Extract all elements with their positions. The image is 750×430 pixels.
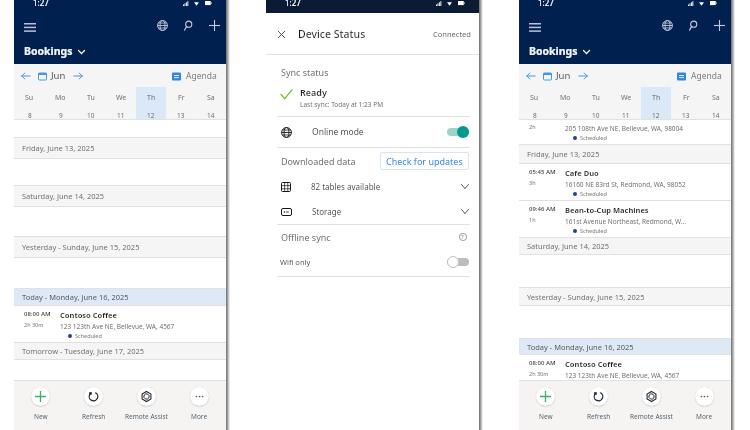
staticText: 14 xyxy=(207,111,215,119)
staticText: 05:45 AM xyxy=(529,168,556,176)
button[interactable]: Remote Assist xyxy=(625,387,678,421)
button[interactable]: Refresh xyxy=(572,387,625,421)
button[interactable]: Su xyxy=(519,87,550,119)
staticText: 8 xyxy=(533,111,537,119)
button[interactable]: More xyxy=(678,387,731,421)
staticText: Contoso Coffee xyxy=(60,310,117,320)
button[interactable]: Agenda xyxy=(172,70,217,82)
staticText: Yesterday - Sunday, June 15, 2025 xyxy=(527,292,645,302)
button[interactable]: Next day xyxy=(575,68,591,84)
staticText: Sync status xyxy=(281,66,329,78)
button[interactable]: Mo xyxy=(45,87,76,119)
staticText: Storage xyxy=(312,206,342,217)
button[interactable]: Search xyxy=(175,15,201,35)
button[interactable]: 09:46 AM xyxy=(519,201,731,238)
button[interactable]: New booking xyxy=(706,15,732,35)
staticText: Bookings xyxy=(529,44,578,58)
staticText: 8 xyxy=(28,111,32,119)
button[interactable]: 82 tables available xyxy=(266,174,479,199)
button[interactable]: Help xyxy=(456,230,469,243)
staticText: ? xyxy=(461,233,464,241)
staticText: 1h xyxy=(529,216,536,223)
button[interactable]: Mo xyxy=(550,87,581,119)
button[interactable]: On xyxy=(447,126,469,138)
staticText: Device Status xyxy=(298,27,366,41)
button[interactable]: Bookings xyxy=(529,44,590,58)
staticText: Online mode xyxy=(312,126,364,138)
button[interactable]: Sa xyxy=(196,87,226,119)
button[interactable]: We xyxy=(611,87,641,119)
button[interactable]: New xyxy=(14,387,67,421)
staticText: Offline sync xyxy=(281,231,331,243)
button[interactable]: Th xyxy=(641,87,671,119)
button[interactable]: Refresh xyxy=(67,387,120,421)
button[interactable]: We xyxy=(106,87,136,119)
staticText: Contoso Coffee xyxy=(565,359,622,369)
staticText: 11 xyxy=(117,111,125,119)
button[interactable]: Web xyxy=(149,15,175,35)
staticText: 13 xyxy=(177,111,185,119)
staticText: 08:00 AM xyxy=(529,359,556,367)
button[interactable]: Bookings xyxy=(24,44,85,58)
button[interactable]: Su xyxy=(14,87,45,119)
staticText: Today - Monday, June 16, 2025 xyxy=(22,292,129,302)
staticText: 2h xyxy=(529,123,536,130)
staticText: Bean-to-Cup Machines xyxy=(565,205,649,215)
staticText: 2h 30m xyxy=(529,370,549,377)
button[interactable]: Off xyxy=(447,256,469,268)
button[interactable]: Previous day xyxy=(18,68,34,84)
button[interactable]: Wifi only xyxy=(266,251,479,273)
staticText: Remote Assist xyxy=(125,412,168,421)
staticText: Wifi only xyxy=(280,257,311,267)
staticText: Yesterday - Sunday, June 15, 2025 xyxy=(22,242,140,252)
staticText: 1:27 xyxy=(33,0,49,8)
staticText: New xyxy=(34,412,48,421)
button[interactable]: Sa xyxy=(701,87,731,119)
button[interactable]: Fr xyxy=(671,87,701,119)
staticText: Th xyxy=(652,93,661,103)
button[interactable]: Storage xyxy=(266,199,479,224)
staticText: Ready xyxy=(300,86,327,98)
staticText: Su xyxy=(530,93,539,103)
staticText: 13 xyxy=(682,111,690,119)
staticText: Su xyxy=(25,93,34,103)
staticText: Tu xyxy=(592,93,600,103)
button[interactable]: Agenda xyxy=(677,70,722,82)
staticText: Sa xyxy=(207,93,215,103)
button[interactable]: Pick date xyxy=(36,70,48,82)
button[interactable]: 08:00 AM xyxy=(14,306,226,343)
button[interactable]: Pick date xyxy=(541,70,553,82)
button[interactable]: Menu xyxy=(525,17,545,37)
button[interactable]: Menu xyxy=(20,17,40,37)
button[interactable]: 09:00 AM xyxy=(519,120,731,145)
staticText: Friday, June 13, 2025 xyxy=(527,149,600,159)
button[interactable]: Close xyxy=(274,27,288,41)
button[interactable]: Previous day xyxy=(523,68,539,84)
button[interactable]: Next day xyxy=(70,68,86,84)
staticText: Jun xyxy=(51,69,66,82)
button[interactable]: Online mode xyxy=(266,117,479,147)
button[interactable]: 08:00 AM xyxy=(519,355,731,380)
button[interactable]: Search xyxy=(680,15,706,35)
staticText: Th xyxy=(147,93,156,103)
staticText: Connected xyxy=(433,29,471,39)
button[interactable]: Tu xyxy=(581,87,611,119)
button[interactable]: Th xyxy=(136,87,166,119)
staticText: 205 108th Ave NE, Bellevue, WA, 98004 xyxy=(565,124,684,133)
button[interactable]: More xyxy=(173,387,226,421)
button[interactable]: Remote Assist xyxy=(120,387,173,421)
staticText: 3h xyxy=(529,179,536,186)
staticText: Tomorrow - Tuesday, June 17, 2025 xyxy=(22,346,145,356)
staticText: Saturday, June 14, 2025 xyxy=(527,241,610,251)
button[interactable]: Tu xyxy=(76,87,106,119)
button[interactable]: Web xyxy=(654,15,680,35)
staticText: Agenda xyxy=(691,70,722,82)
button[interactable]: 05:45 AM xyxy=(519,164,731,201)
button[interactable]: Check for updates xyxy=(380,152,469,170)
button[interactable]: New booking xyxy=(201,15,227,35)
staticText: Tu xyxy=(87,93,95,103)
button[interactable]: Fr xyxy=(166,87,196,119)
button[interactable]: New xyxy=(519,387,572,421)
staticText: 14 xyxy=(712,111,720,119)
